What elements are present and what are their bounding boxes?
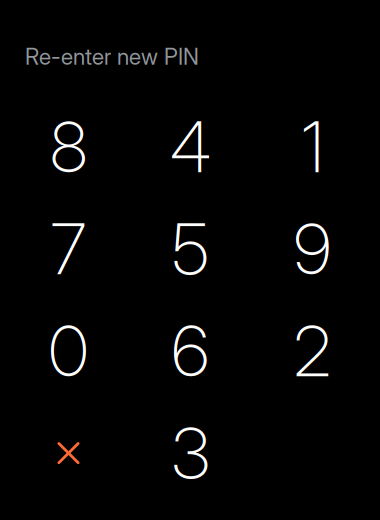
staticText: 8 (50, 105, 87, 189)
button[interactable]: Delete (7, 402, 129, 504)
button[interactable]: 6 (129, 300, 251, 402)
button[interactable]: 0 (7, 300, 129, 402)
button[interactable]: 2 (251, 300, 373, 402)
staticText: Re-enter new PIN (25, 43, 199, 70)
staticText: 6 (171, 309, 209, 393)
button[interactable]: 9 (251, 198, 373, 300)
staticText: 0 (48, 309, 88, 393)
staticText: 7 (50, 207, 86, 291)
button[interactable]: 5 (129, 198, 251, 300)
button[interactable]: 4 (129, 96, 251, 198)
button[interactable]: 3 (129, 402, 251, 504)
staticText: 5 (172, 207, 209, 291)
button[interactable]: 1 (251, 96, 373, 198)
staticText: 3 (171, 411, 209, 495)
staticText: 1 (301, 105, 323, 189)
staticText: 2 (293, 309, 331, 393)
button[interactable]: 7 (7, 198, 129, 300)
button[interactable]: 8 (7, 96, 129, 198)
staticText: 9 (293, 207, 331, 291)
staticText: 4 (170, 105, 211, 189)
